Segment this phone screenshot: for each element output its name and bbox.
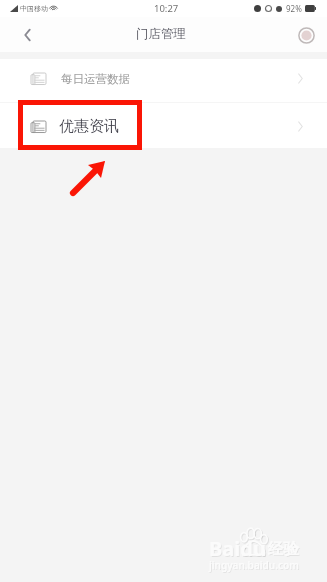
staticText: jingyan.baidu.com (210, 559, 300, 573)
staticText: Baidu (209, 535, 266, 562)
staticText: 经验 (269, 540, 300, 560)
staticText: jingyan.baidu.com (209, 558, 299, 572)
button[interactable]: Back (10, 18, 44, 52)
staticText: 经验 (268, 539, 299, 559)
staticText: 10:27 (154, 2, 179, 15)
staticText: Baidu (210, 536, 267, 563)
staticText: 门店管理 (136, 26, 186, 42)
staticText: 92% (286, 3, 302, 14)
staticText: 每日运营数据 (61, 72, 130, 86)
staticText: 中国移动 (20, 4, 48, 13)
button[interactable]: Customer service (290, 19, 322, 51)
button[interactable]: 优惠资讯 (0, 103, 327, 148)
staticText: 优惠资讯 (59, 117, 119, 136)
button[interactable]: 每日运营数据 (0, 59, 327, 102)
